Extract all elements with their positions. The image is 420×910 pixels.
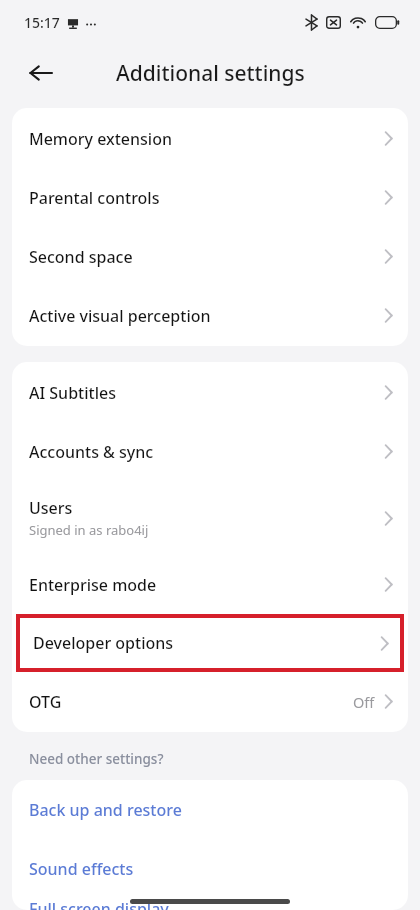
staticText: Accounts & sync [29,441,154,463]
staticText: Back up and restore [29,799,182,821]
button[interactable]: Sound effects [12,839,408,898]
button[interactable]: OTG [12,672,408,731]
staticText: Parental controls [29,187,160,209]
staticText: Users [29,497,73,519]
button[interactable]: Users [12,481,408,555]
button[interactable]: Developer options [16,614,404,672]
staticText: Need other settings? [29,750,164,768]
staticText: AI Subtitles [29,382,116,404]
staticText: Off [353,692,375,712]
staticText: Sound effects [29,858,134,880]
button[interactable]: Second space [12,227,408,286]
staticText: Additional settings [116,59,305,88]
button[interactable]: Accounts & sync [12,422,408,481]
button[interactable]: Enterprise mode [12,555,408,614]
staticText: Memory extension [29,128,172,150]
staticText: Enterprise mode [29,574,157,596]
button[interactable]: AI Subtitles [12,363,408,422]
staticText: Full screen display [29,898,169,910]
button[interactable]: Back up and restore [12,780,408,839]
button[interactable]: Parental controls [12,168,408,227]
button[interactable]: Full screen display [12,898,408,910]
button[interactable]: Back [20,52,62,94]
button[interactable]: Active visual perception [12,286,408,345]
staticText: OTG [29,691,62,713]
staticText: Active visual perception [29,305,211,327]
staticText: Developer options [33,632,174,654]
button[interactable]: Memory extension [12,109,408,168]
staticText: 15:17 [24,13,60,32]
staticText: Second space [29,246,133,268]
staticText: Signed in as rabo4ij [29,521,149,539]
